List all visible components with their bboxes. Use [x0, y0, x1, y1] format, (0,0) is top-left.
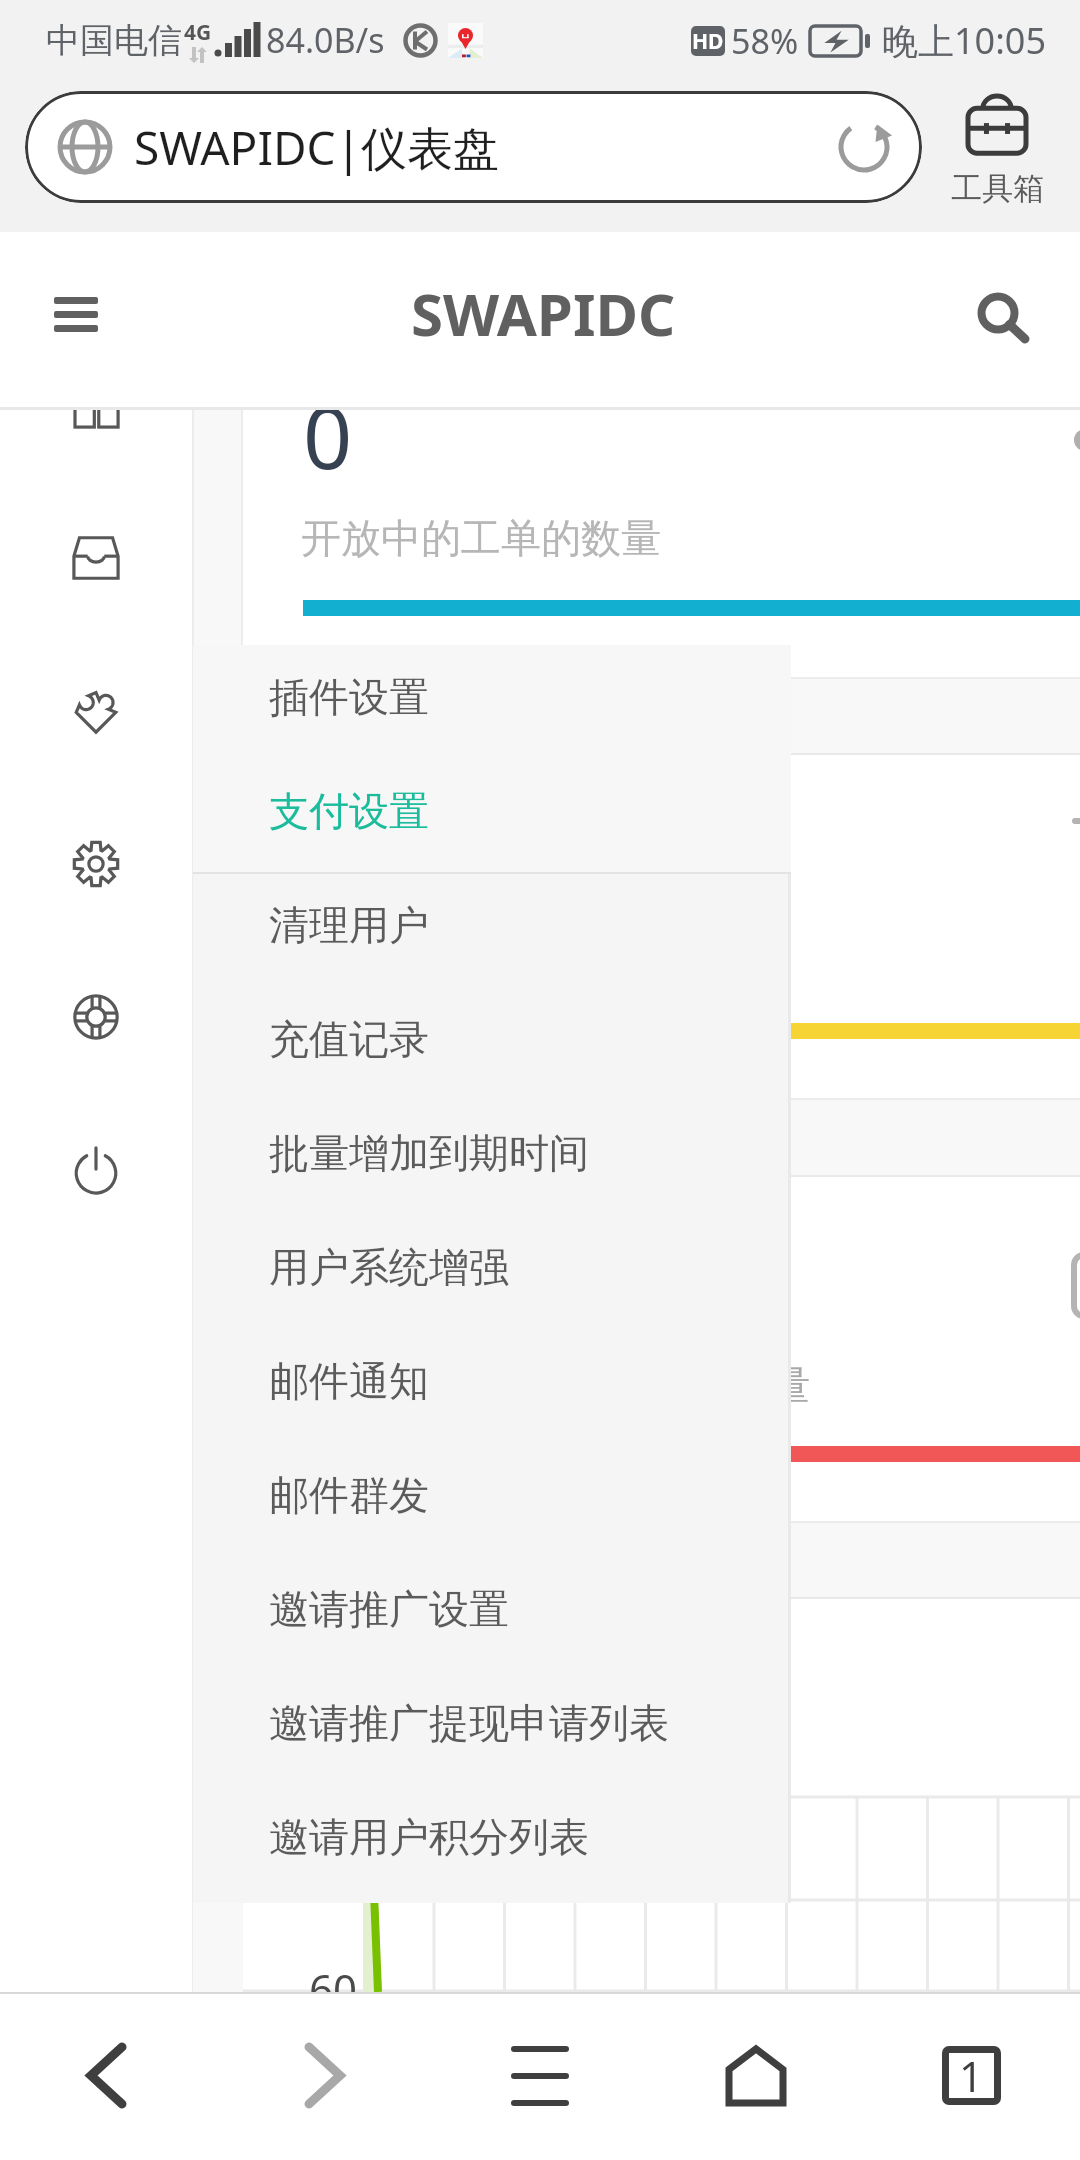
- button[interactable]: 邀请用户积分列表: [193, 1780, 791, 1894]
- button[interactable]: Browser menu: [484, 1992, 596, 2160]
- button[interactable]: 邀请推广提现申请列表: [193, 1666, 791, 1780]
- staticText: 60: [309, 1960, 358, 1992]
- button[interactable]: Tabs: 1: [915, 1992, 1027, 2160]
- staticText: 清理用户: [269, 900, 429, 950]
- button[interactable]: Search: [956, 270, 1046, 362]
- staticText: 开放中的工单的数量: [301, 513, 661, 563]
- button[interactable]: 邮件群发: [193, 1438, 791, 1552]
- staticText: 用户系统增强: [269, 1242, 509, 1292]
- button[interactable]: 用户系统增强: [193, 1210, 791, 1324]
- staticText: 邮件通知: [269, 1356, 429, 1406]
- other: Toolbox: [966, 93, 1028, 157]
- staticText: 支付设置: [269, 786, 429, 836]
- staticText: 晚上10:05: [882, 16, 1047, 65]
- button[interactable]: 插件设置: [193, 640, 791, 754]
- button[interactable]: Plugins: [73, 688, 119, 734]
- button[interactable]: 批量增加到期时间: [193, 1096, 791, 1210]
- staticText: 邀请推广提现申请列表: [269, 1698, 669, 1748]
- staticText: 邀请推广设置: [269, 1584, 509, 1634]
- staticText: 批量增加到期时间: [269, 1128, 589, 1178]
- button[interactable]: 清理用户: [193, 868, 791, 982]
- button[interactable]: Logout: [73, 1147, 119, 1193]
- staticText: 工具箱: [951, 169, 1044, 208]
- staticText: 邮件群发: [269, 1470, 429, 1520]
- staticText: 84.0B/s: [266, 17, 385, 63]
- button[interactable]: Back: [52, 1992, 160, 2160]
- button[interactable]: Support: [73, 994, 119, 1040]
- button[interactable]: Dashboard: [73, 410, 119, 428]
- staticText: SWAPIDC|仪表盘: [134, 116, 500, 179]
- button[interactable]: Inbox: [73, 535, 119, 581]
- staticText: 插件设置: [269, 672, 429, 722]
- button[interactable]: 充值记录: [193, 982, 791, 1096]
- button[interactable]: Toolbox: [936, 88, 1058, 218]
- button[interactable]: 邀请推广设置: [193, 1552, 791, 1666]
- button[interactable]: 支付设置: [193, 754, 791, 868]
- staticText: HD: [692, 27, 724, 56]
- staticText: 中国电信: [46, 19, 182, 62]
- staticText: SWAPIDC: [411, 274, 676, 353]
- button[interactable]: Home: [700, 1992, 812, 2160]
- staticText: 0: [303, 410, 353, 494]
- staticText: 4G: [184, 18, 212, 47]
- button[interactable]: Forward: [270, 1992, 380, 2160]
- button[interactable]: Settings: [73, 841, 119, 887]
- staticText: 邀请用户积分列表: [269, 1812, 589, 1862]
- button[interactable]: Open navigation: [36, 279, 116, 351]
- staticText: 充值记录: [269, 1014, 429, 1064]
- button[interactable]: SWAPIDC|仪表盘: [25, 91, 922, 203]
- other: Refresh: [836, 119, 892, 175]
- staticText: 1: [959, 2047, 984, 2104]
- staticText: 量: [770, 1360, 810, 1410]
- button[interactable]: 邮件通知: [193, 1324, 791, 1438]
- staticText: 58%: [731, 18, 799, 64]
